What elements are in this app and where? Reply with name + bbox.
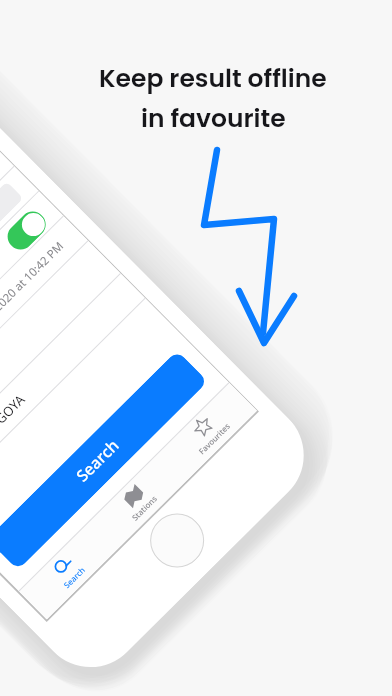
staticText: 14/09/2020 at 10:42 PM <box>0 238 67 340</box>
staticText: Buenos Aires - GOYA <box>0 391 28 491</box>
staticText: Favourites <box>196 420 233 456</box>
staticText: Search <box>71 434 124 486</box>
button[interactable]: Favourites <box>159 384 256 480</box>
button[interactable]: Save offline toggle <box>2 206 51 255</box>
staticText: Search <box>61 564 87 590</box>
staticText: in favourite <box>141 101 286 136</box>
staticText: Stations <box>129 492 160 523</box>
button[interactable] <box>0 181 24 290</box>
button[interactable]: Search <box>19 522 116 619</box>
button[interactable]: Stations <box>89 453 186 549</box>
staticText: Keep result offline <box>99 61 327 96</box>
button[interactable]: Home <box>139 502 215 579</box>
button[interactable]: Search <box>0 350 208 570</box>
